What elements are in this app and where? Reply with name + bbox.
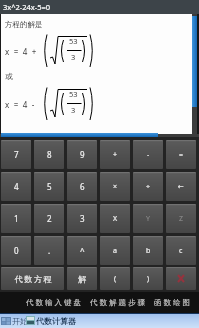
staticText: × [113, 182, 118, 192]
staticText: 4 [14, 181, 19, 192]
staticText: Z [179, 214, 184, 224]
staticText: 代数解题步骤 [89, 298, 146, 307]
staticText: 代数方程 [14, 274, 52, 284]
button[interactable]: 7 [1, 140, 31, 169]
button[interactable]: ( [100, 267, 130, 290]
staticText: 解 [78, 274, 86, 284]
staticText: 0 [14, 245, 19, 256]
button[interactable]: . [34, 236, 64, 265]
staticText: 3x^2-24x-5=0 [3, 2, 51, 12]
button[interactable]: 函数绘图 [150, 292, 194, 313]
staticText: ← [178, 183, 184, 191]
button[interactable]: 代数计算器 [36, 314, 88, 328]
staticText: 1 [14, 213, 19, 224]
staticText: 8 [47, 149, 52, 160]
staticText: 函数绘图 [153, 298, 191, 307]
staticText: 5 [47, 181, 52, 192]
button[interactable]: 代数解题步骤 [86, 292, 148, 313]
button[interactable]: Y [133, 204, 163, 233]
staticText: = [179, 150, 184, 160]
button[interactable]: - [133, 140, 163, 169]
staticText: ) [147, 274, 150, 284]
button[interactable]: 2 [34, 204, 64, 233]
staticText: 或 [5, 72, 13, 81]
button[interactable]: 解 [67, 267, 97, 290]
button[interactable]: 9 [67, 140, 97, 169]
button[interactable]: Z [166, 204, 196, 233]
staticText: 53 [69, 89, 78, 99]
button[interactable]: ← [166, 172, 196, 201]
button[interactable]: 6 [67, 172, 97, 201]
staticText: 开始 [12, 316, 28, 326]
button[interactable]: X [100, 204, 130, 233]
staticText: x = 4 + [5, 46, 38, 57]
staticText: 方程的解是 [5, 20, 43, 29]
button[interactable]: + [100, 140, 130, 169]
staticText: 53 [69, 36, 78, 46]
staticText: a [113, 246, 117, 256]
button[interactable]: ÷ [133, 172, 163, 201]
staticText: 7 [14, 149, 19, 160]
staticText: 9 [80, 149, 85, 160]
button[interactable]: 5 [34, 172, 64, 201]
staticText: ^ [80, 245, 85, 256]
button[interactable]: 开始 [11, 314, 29, 328]
staticText: b [146, 246, 151, 256]
staticText: ( [114, 274, 117, 284]
staticText: x = 4 - [5, 99, 36, 110]
button[interactable]: b [133, 236, 163, 265]
button[interactable]: ^ [67, 236, 97, 265]
button[interactable]: 1 [1, 204, 31, 233]
staticText: ÷ [146, 182, 151, 192]
staticText: + [113, 150, 118, 160]
button[interactable]: 3 [67, 204, 97, 233]
button[interactable]: a [100, 236, 130, 265]
button[interactable]: c [166, 236, 196, 265]
button[interactable] [166, 267, 196, 290]
staticText: Y [146, 214, 150, 224]
staticText: c [179, 246, 183, 256]
button[interactable]: × [100, 172, 130, 201]
button[interactable]: 3x^2-24x-5=0 [0, 0, 199, 14]
staticText: 2 [47, 213, 52, 224]
staticText: 6 [80, 181, 85, 192]
staticText: 3 [71, 52, 76, 62]
button[interactable]: 代数方程 [1, 267, 64, 290]
staticText: 代数计算器 [36, 316, 76, 326]
button[interactable]: = [166, 140, 196, 169]
button[interactable]: 0 [1, 236, 31, 265]
button[interactable]: 代数输入键盘 [22, 292, 84, 313]
button[interactable]: 4 [1, 172, 31, 201]
button[interactable]: 8 [34, 140, 64, 169]
staticText: . [48, 245, 51, 256]
staticText: 代数输入键盘 [25, 298, 82, 307]
staticText: X [113, 214, 118, 224]
staticText: 3 [71, 105, 76, 115]
staticText: - [147, 150, 150, 160]
staticText: 3 [80, 213, 85, 224]
button[interactable]: ) [133, 267, 163, 290]
